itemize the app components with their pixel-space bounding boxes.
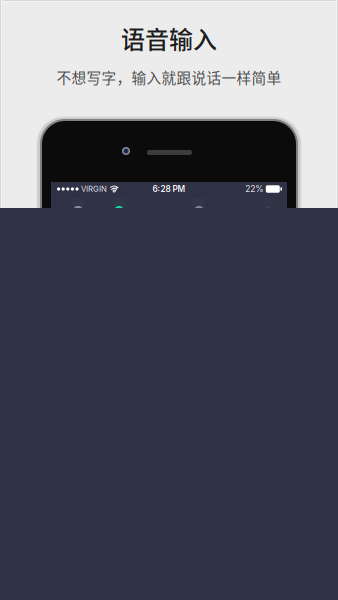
button[interactable]: Messages tab (51, 196, 287, 208)
button[interactable]: Discover tab (51, 196, 287, 208)
button[interactable]: Me tab (51, 196, 287, 208)
staticText: 22% (245, 184, 263, 194)
staticText: VIRGIN (81, 184, 107, 194)
staticText: 不想写字，输入就跟说话一样简单 (56, 66, 281, 88)
staticText: 6:28 PM (152, 184, 185, 194)
button[interactable]: Voice input tab (51, 196, 287, 208)
staticText: 语音输入 (121, 21, 217, 55)
